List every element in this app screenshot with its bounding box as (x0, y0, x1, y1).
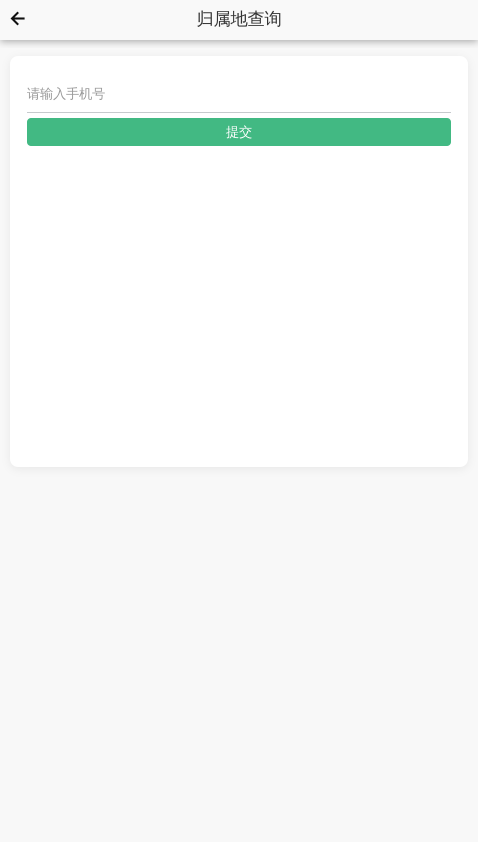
staticText: 提交 (226, 124, 252, 140)
staticText: 归属地查询 (196, 8, 281, 30)
staticText: 请输入手机号 (27, 86, 105, 102)
button[interactable]: 提交 (27, 118, 451, 146)
button[interactable]: 请输入手机号 (27, 56, 451, 113)
button[interactable]: Back (0, 0, 34, 40)
